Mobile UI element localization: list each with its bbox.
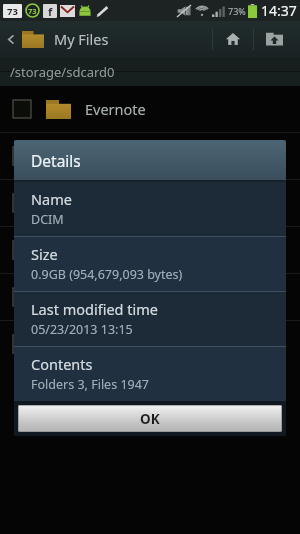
button[interactable]: DCIM [0, 133, 300, 179]
staticText: 73% [228, 5, 246, 17]
button[interactable]: Back [0, 21, 22, 57]
staticText: Folders 3, Files 1947 [31, 376, 149, 393]
staticText: My Files [54, 29, 109, 49]
button[interactable]: download [0, 227, 300, 273]
staticText: DCIM [31, 211, 64, 228]
staticText: OK [140, 410, 160, 428]
staticText: 14:37 [261, 1, 297, 20]
staticText: Last modified time [31, 299, 158, 319]
staticText: Details [31, 150, 81, 171]
staticText: buzzfeed [85, 334, 147, 354]
staticText: f [48, 4, 53, 18]
staticText: Evernote [85, 99, 146, 119]
button[interactable]: Home [213, 21, 253, 57]
staticText: 73 [7, 5, 18, 18]
staticText: 0.9GB (954,679,093 bytes) [31, 266, 183, 283]
staticText: Size [31, 244, 58, 264]
staticText: Name [31, 189, 72, 209]
staticText: DCIM [85, 146, 123, 166]
staticText: Yahoo! [85, 287, 132, 307]
staticText: 05/23/2013 13:15 [31, 321, 133, 338]
button[interactable]: buzzfeed [0, 321, 300, 367]
button[interactable]: Up one level [254, 21, 294, 57]
button[interactable]: Yahoo! [0, 274, 300, 320]
staticText: Contents [31, 354, 93, 374]
button[interactable]: Download [0, 180, 300, 226]
button[interactable]: /storage/sdcard0 [0, 57, 300, 86]
staticText: 73 [28, 6, 37, 16]
button[interactable]: Evernote [0, 86, 300, 132]
staticText: /storage/sdcard0 [10, 63, 115, 81]
button[interactable]: OK [18, 405, 282, 432]
